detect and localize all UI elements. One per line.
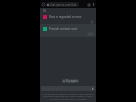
button[interactable]: Tabs: [86, 2, 91, 7]
staticText: chat.openai.com/chat: [50, 3, 77, 7]
button[interactable]: Home: [41, 2, 46, 7]
staticText: Rust is regarded to mos: [49, 15, 82, 19]
button[interactable]: Send: [92, 88, 94, 90]
button[interactable]: Provide content cont: [40, 24, 96, 36]
staticText: Provide content cont: [49, 27, 78, 31]
button[interactable]: Rust is regarded to mos: [40, 12, 96, 24]
button[interactable]: More options: [91, 2, 96, 7]
staticText: Try again: [66, 79, 78, 83]
button[interactable]: chat.openai.com/chat: [46, 2, 79, 7]
button[interactable]: Try again: [62, 79, 79, 83]
staticText: Free Research Preview. ChatGPT may produ…: [42, 92, 94, 101]
button[interactable]: Send a message...: [41, 86, 95, 91]
